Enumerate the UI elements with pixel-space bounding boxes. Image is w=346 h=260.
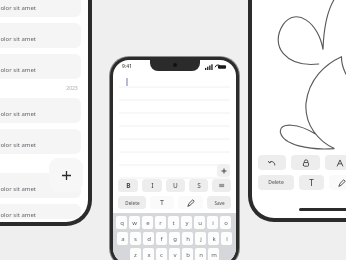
button[interactable]: z (130, 248, 141, 260)
button[interactable]: Redo (291, 155, 320, 170)
button[interactable]: o (220, 216, 231, 229)
button[interactable]: Note (0, 0, 81, 17)
button[interactable]: d (143, 232, 154, 245)
staticText: Save (214, 200, 225, 206)
button[interactable]: B (118, 179, 138, 192)
staticText: 9:41 (122, 63, 132, 70)
staticText: Delete (125, 200, 140, 206)
button[interactable]: Note (0, 98, 81, 123)
staticText: Lorem ipsum dolor sit amet (0, 35, 36, 43)
button[interactable]: j (195, 232, 206, 245)
staticText: b (186, 251, 190, 259)
staticText: t (172, 219, 175, 227)
button[interactable]: U (166, 179, 185, 192)
staticText: T (160, 198, 164, 208)
button[interactable]: Add (217, 164, 230, 177)
staticText: d (147, 235, 151, 243)
staticText: ≡ (218, 181, 225, 190)
button[interactable]: l (221, 232, 232, 245)
button[interactable]: r (155, 216, 166, 229)
button[interactable]: Undo (258, 155, 286, 170)
button[interactable]: Note (0, 54, 81, 79)
button[interactable]: Text tool (299, 175, 324, 190)
staticText: a (121, 235, 125, 243)
button[interactable]: x (143, 248, 154, 260)
staticText: Delete (268, 179, 284, 186)
staticText: i (212, 219, 214, 227)
staticText: f (160, 235, 163, 243)
button[interactable]: Note (0, 173, 81, 198)
button[interactable]: n (195, 248, 206, 260)
button[interactable]: s (130, 232, 141, 245)
staticText: r (159, 219, 162, 227)
button[interactable]: u (194, 216, 205, 229)
button[interactable]: Note (0, 129, 81, 154)
button[interactable]: y (181, 216, 192, 229)
button[interactable]: Delete (258, 175, 294, 190)
staticText: q (120, 219, 124, 227)
button[interactable]: v (169, 248, 180, 260)
button[interactable]: I (142, 179, 162, 192)
staticText: w (132, 219, 137, 227)
button[interactable]: m (208, 248, 219, 260)
staticText: e (146, 219, 150, 227)
button[interactable]: Note (0, 204, 81, 219)
button[interactable]: i (207, 216, 218, 229)
staticText: Lorem ipsum dolor sit amet (0, 66, 36, 74)
button[interactable]: g (169, 232, 180, 245)
button[interactable]: Delete (118, 196, 146, 209)
button[interactable]: S (189, 179, 208, 192)
staticText: I (151, 181, 154, 190)
staticText: 2023 (66, 85, 78, 92)
staticText: l (226, 235, 228, 243)
staticText: Lorem ipsum dolor sit amet (0, 141, 36, 149)
button[interactable]: t (168, 216, 179, 229)
staticText: S (197, 181, 201, 190)
button[interactable]: Pen tool (329, 175, 346, 190)
staticText: z (134, 251, 137, 259)
staticText: v (173, 251, 177, 259)
button[interactable]: b (182, 248, 193, 260)
button[interactable]: Note (0, 23, 81, 48)
button[interactable]: ≡ (212, 179, 231, 192)
staticText: y (185, 219, 189, 227)
staticText: Lorem ipsum dolor sit amet (0, 4, 36, 12)
staticText: j (200, 235, 202, 243)
button[interactable]: Text style (325, 155, 346, 170)
button[interactable]: Text tool (150, 196, 174, 209)
staticText: u (198, 219, 202, 227)
staticText: m (211, 251, 217, 259)
button[interactable]: w (129, 216, 140, 229)
staticText: Lorem ipsum dolor sit amet (0, 185, 36, 193)
button[interactable]: Save (207, 196, 231, 209)
staticText: g (173, 235, 177, 243)
button[interactable]: e (142, 216, 153, 229)
button[interactable]: Pen tool (178, 196, 203, 209)
staticText: U (173, 181, 178, 190)
staticText: T (309, 177, 314, 188)
staticText: Lorem ipsum dolor sit amet (0, 110, 36, 118)
button[interactable]: New note (49, 158, 83, 192)
button[interactable]: c (156, 248, 167, 260)
button[interactable]: a (117, 232, 128, 245)
staticText: B (126, 181, 131, 190)
staticText: n (199, 251, 203, 259)
button[interactable]: f (156, 232, 167, 245)
staticText: c (160, 251, 163, 259)
staticText: o (224, 219, 228, 227)
staticText: h (186, 235, 190, 243)
staticText: s (134, 235, 137, 243)
staticText: x (147, 251, 151, 259)
button[interactable]: k (208, 232, 219, 245)
staticText: Lorem ipsum dolor sit amet (0, 211, 36, 219)
button[interactable]: q (116, 216, 127, 229)
staticText: k (212, 235, 216, 243)
button[interactable]: h (182, 232, 193, 245)
